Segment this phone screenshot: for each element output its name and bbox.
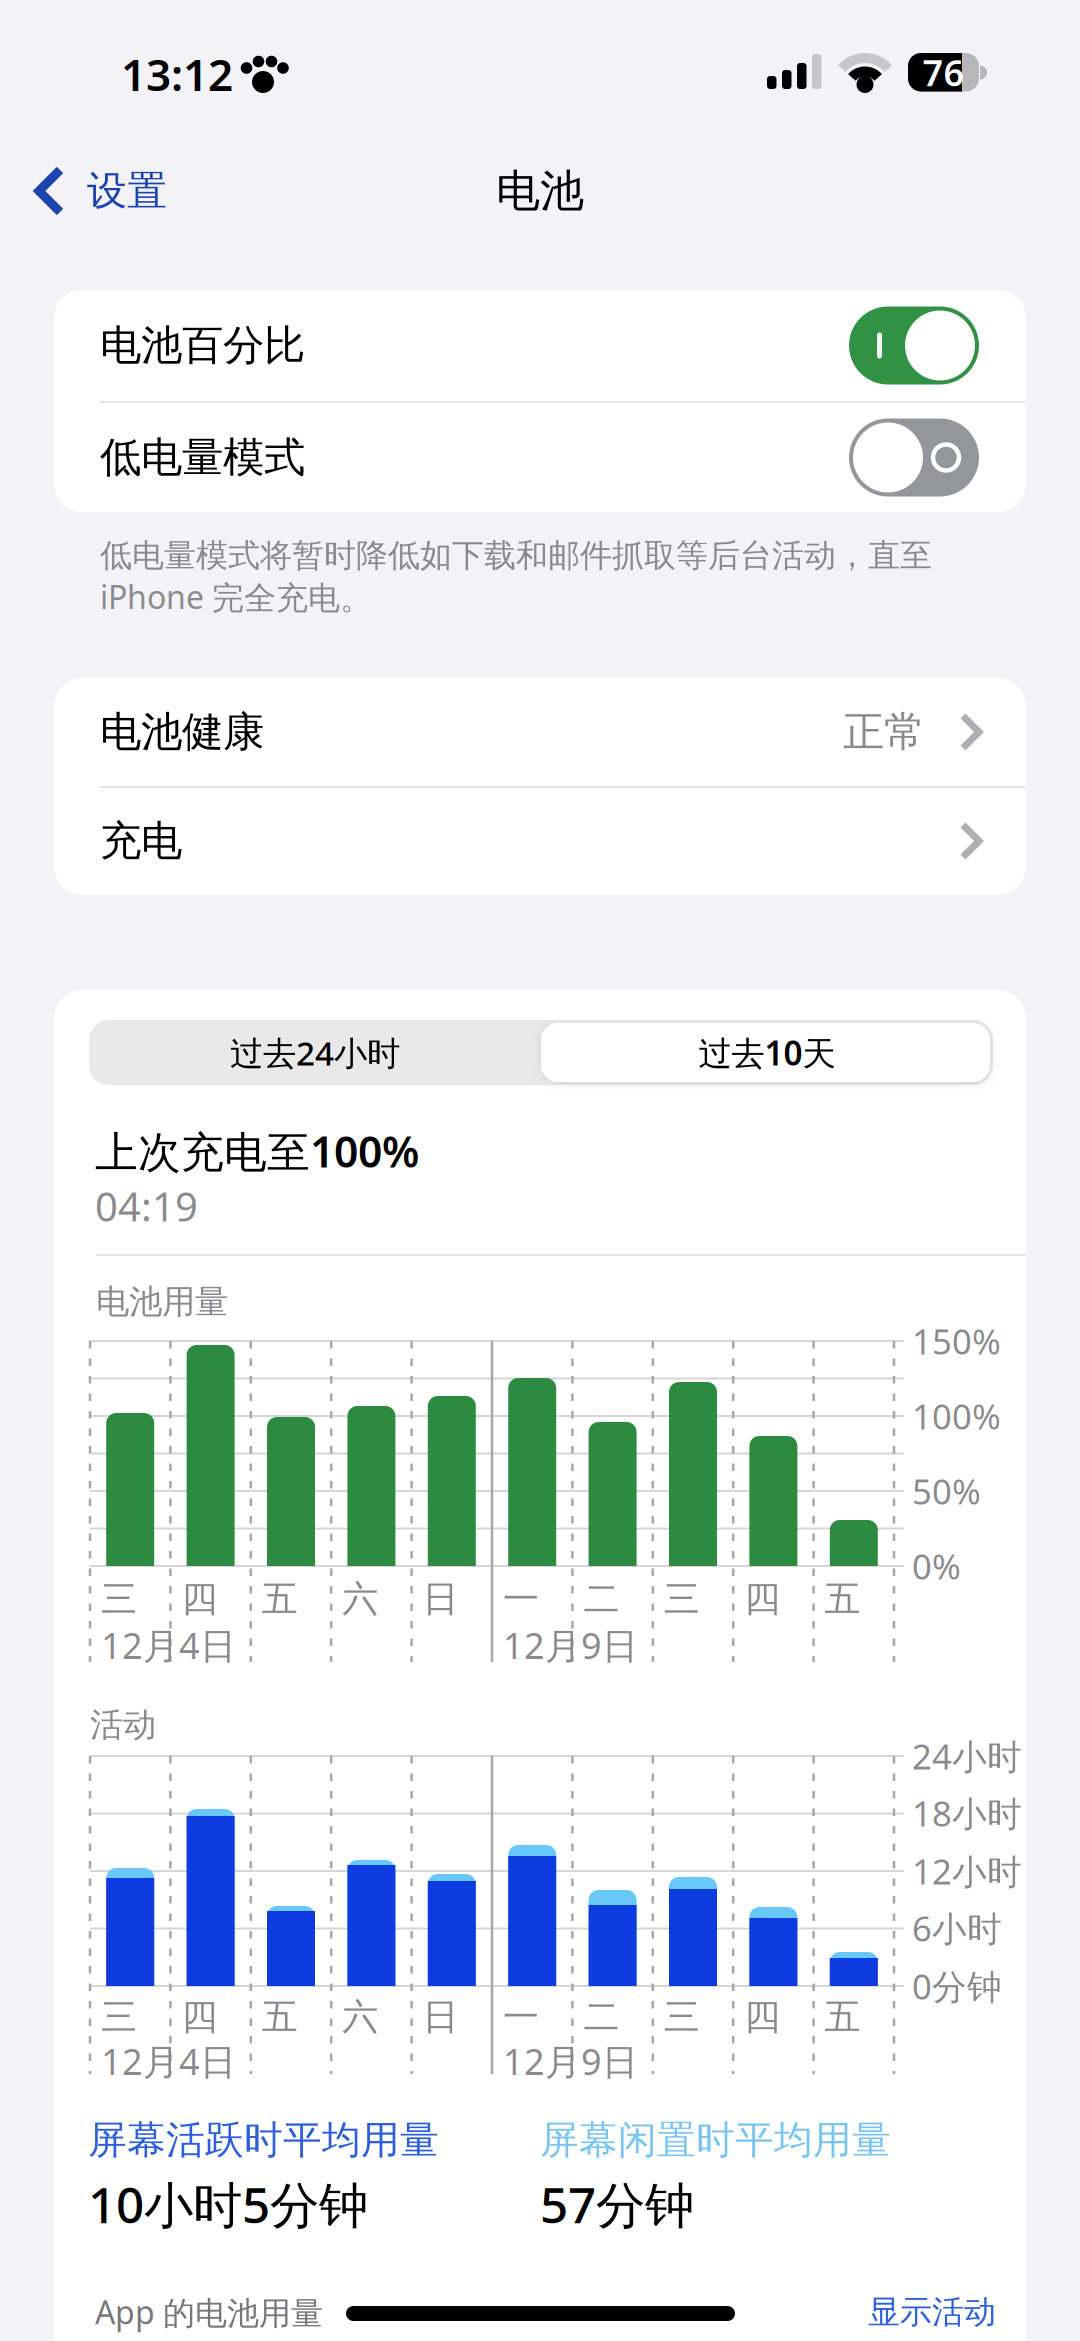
button[interactable]: 低电量模式 bbox=[54, 402, 1026, 513]
staticText: 18小时 bbox=[912, 1790, 1022, 1836]
button[interactable]: 显示活动 bbox=[796, 2287, 996, 2337]
button[interactable]: 设置 bbox=[34, 165, 167, 217]
staticText: 四 bbox=[181, 1995, 217, 2039]
staticText: 过去24小时 bbox=[230, 1030, 400, 1075]
staticText: 6小时 bbox=[912, 1905, 1002, 1951]
staticText: 三 bbox=[101, 1577, 137, 1621]
staticText: 上次充电至100% bbox=[95, 1123, 419, 1179]
staticText: 电池 bbox=[496, 164, 584, 218]
staticText: 三 bbox=[664, 1577, 700, 1621]
staticText: 13:12 bbox=[121, 45, 233, 103]
staticText: 电池健康 bbox=[100, 707, 264, 757]
staticText: 0分钟 bbox=[912, 1963, 1002, 2009]
staticText: 五 bbox=[825, 1995, 861, 2039]
button[interactable]: 过去24小时 bbox=[89, 1020, 541, 1085]
staticText: 活动 bbox=[90, 1704, 156, 1745]
staticText: 电池百分比 bbox=[100, 320, 305, 371]
button[interactable]: 过去10天 bbox=[541, 1020, 993, 1085]
staticText: 四 bbox=[744, 1577, 780, 1621]
staticText: 四 bbox=[744, 1995, 780, 2039]
staticText: 三 bbox=[101, 1995, 137, 2039]
staticText: 10小时5分钟 bbox=[88, 2171, 368, 2237]
button[interactable]: 充电 bbox=[54, 787, 1026, 895]
staticText: 76 bbox=[922, 48, 964, 96]
staticText: 五 bbox=[262, 1577, 298, 1621]
staticText: 六 bbox=[342, 1577, 378, 1621]
staticText: 二 bbox=[583, 1995, 619, 2039]
staticText: 二 bbox=[583, 1577, 619, 1621]
staticText: 150% bbox=[912, 1318, 1001, 1364]
staticText: 一 bbox=[503, 1995, 539, 2039]
staticText: 三 bbox=[664, 1995, 700, 2039]
staticText: 12月4日 bbox=[101, 2037, 236, 2085]
staticText: 12月9日 bbox=[503, 2037, 638, 2085]
staticText: 设置 bbox=[87, 166, 167, 215]
staticText: 五 bbox=[825, 1577, 861, 1621]
staticText: 57分钟 bbox=[540, 2171, 694, 2237]
staticText: 六 bbox=[342, 1995, 378, 2039]
staticText: 日 bbox=[423, 1577, 459, 1621]
staticText: 电池用量 bbox=[96, 1281, 228, 1322]
staticText: 12小时 bbox=[912, 1848, 1022, 1894]
staticText: 12月9日 bbox=[503, 1621, 638, 1669]
staticText: 一 bbox=[503, 1577, 539, 1621]
staticText: 100% bbox=[912, 1393, 1001, 1439]
staticText: 04:19 bbox=[95, 1179, 198, 1232]
staticText: 显示活动 bbox=[868, 2292, 996, 2332]
staticText: 12月4日 bbox=[101, 1621, 236, 1669]
staticText: 0% bbox=[912, 1543, 961, 1589]
staticText: 屏幕闲置时平均用量 bbox=[540, 2116, 891, 2164]
staticText: 正常 bbox=[843, 707, 925, 757]
staticText: 五 bbox=[262, 1995, 298, 2039]
button[interactable]: 电池百分比 bbox=[54, 290, 1026, 401]
staticText: 低电量模式将暂时降低如下载和邮件抓取等后台活动，直至 iPhone 完全充电。 bbox=[100, 536, 932, 618]
staticText: 50% bbox=[912, 1468, 981, 1514]
button[interactable]: 电池健康 bbox=[54, 678, 1026, 786]
staticText: 过去10天 bbox=[698, 1030, 835, 1075]
staticText: 屏幕活跃时平均用量 bbox=[88, 2116, 439, 2164]
staticText: 24小时 bbox=[912, 1733, 1022, 1779]
staticText: 低电量模式 bbox=[100, 432, 305, 483]
staticText: 日 bbox=[423, 1995, 459, 2039]
staticText: 充电 bbox=[100, 816, 182, 866]
staticText: 四 bbox=[181, 1577, 217, 1621]
staticText: App 的电池用量 bbox=[95, 2291, 323, 2333]
